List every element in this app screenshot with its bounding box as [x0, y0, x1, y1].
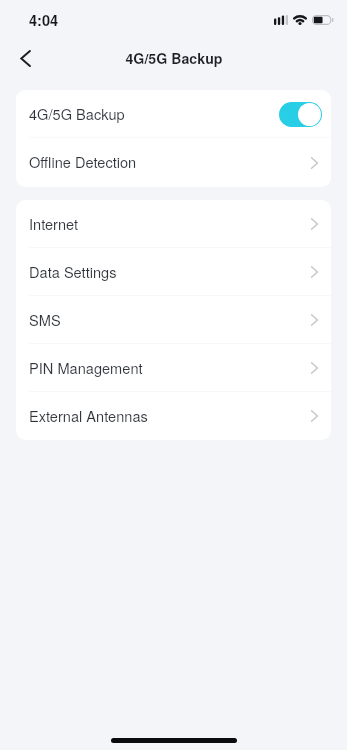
button[interactable]: Data Settings: [16, 248, 331, 296]
button[interactable]: SMS: [16, 296, 331, 344]
staticText: 4:04: [29, 10, 59, 31]
staticText: 4G/5G Backup: [125, 48, 223, 68]
button[interactable]: Back: [5, 38, 45, 78]
button[interactable]: Offline Detection: [16, 138, 331, 187]
staticText: SMS: [29, 309, 61, 330]
staticText: PIN Management: [29, 357, 143, 378]
staticText: Data Settings: [29, 261, 117, 282]
staticText: Internet: [29, 213, 79, 234]
button[interactable]: 4G/5G Backup toggle: [279, 102, 322, 127]
button[interactable]: Internet: [16, 200, 331, 248]
staticText: Offline Detection: [29, 151, 137, 172]
staticText: External Antennas: [29, 405, 148, 426]
button[interactable]: 4G/5G Backup: [16, 90, 331, 138]
staticText: 4G/5G Backup: [29, 103, 125, 124]
button[interactable]: PIN Management: [16, 344, 331, 392]
button[interactable]: External Antennas: [16, 392, 331, 440]
